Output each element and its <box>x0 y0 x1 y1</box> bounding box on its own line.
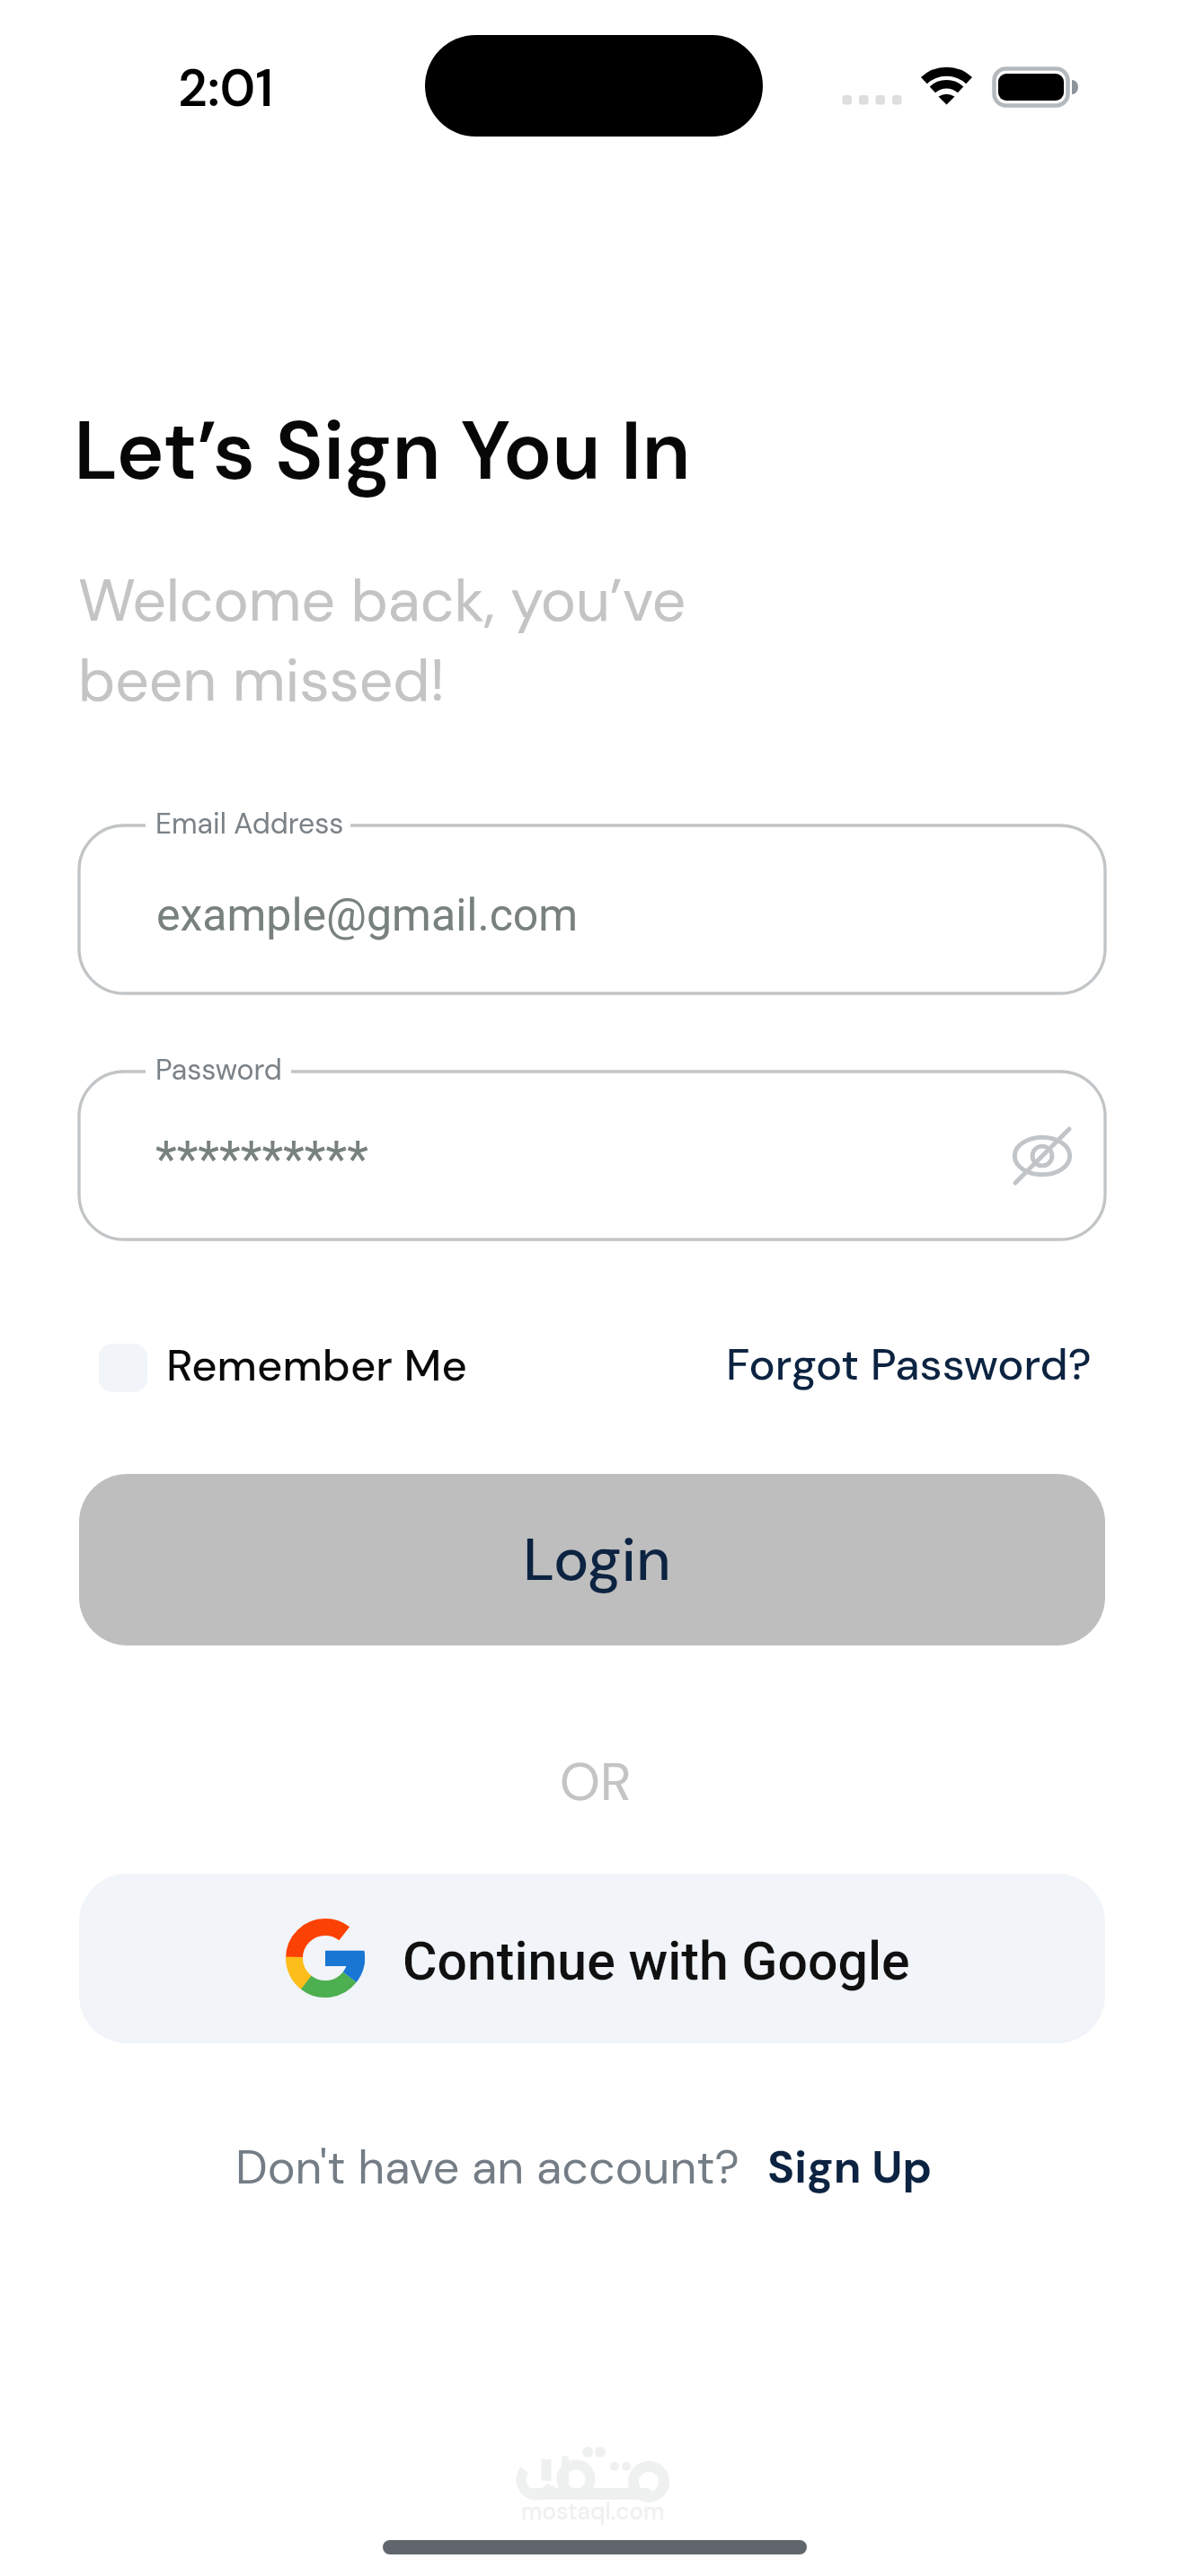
staticText: Email Address <box>155 805 344 842</box>
button[interactable]: Show password <box>997 1111 1087 1201</box>
staticText: Remember Me <box>166 1337 467 1394</box>
staticText: ********** <box>155 1131 368 1188</box>
staticText: Continue with Google <box>403 1930 910 1992</box>
button[interactable] <box>79 1474 1105 1645</box>
staticText: Let’s Sign You In <box>74 399 691 504</box>
staticText: been missed! <box>78 642 446 719</box>
button[interactable] <box>79 1326 483 1408</box>
button[interactable] <box>755 2136 939 2211</box>
staticText: 2:01 <box>178 55 274 121</box>
staticText: Forgot Password? <box>726 1336 1092 1393</box>
staticText: example@gmail.com <box>156 889 579 942</box>
button[interactable] <box>710 1326 1105 1408</box>
staticText: mostaql.com <box>521 2496 665 2527</box>
staticText: Don't have an account? <box>235 2137 739 2198</box>
staticText: OR <box>560 1748 632 1816</box>
staticText: Login <box>523 1522 671 1599</box>
staticText: Sign Up <box>767 2138 933 2196</box>
staticText: Welcome back, you’ve <box>78 562 686 640</box>
staticText: Password <box>155 1051 282 1089</box>
button[interactable] <box>79 1874 1105 2043</box>
